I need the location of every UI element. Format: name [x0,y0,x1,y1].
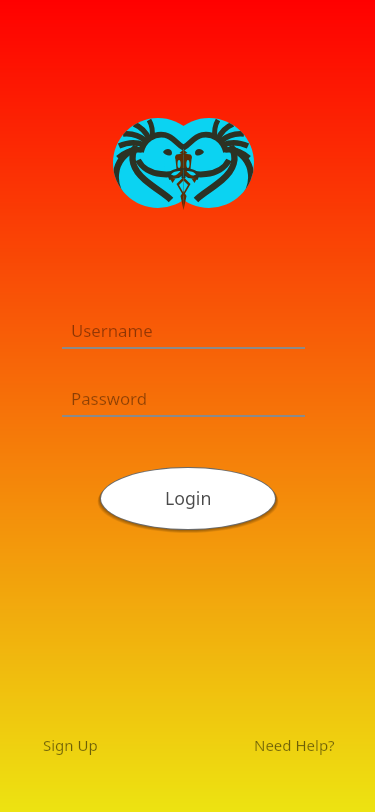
button[interactable]: Need Help? [248,729,341,761]
staticText: Need Help? [254,735,335,755]
button[interactable]: Username [62,319,305,349]
staticText: Login [165,486,212,510]
staticText: Sign Up [43,735,98,755]
button[interactable]: Login [98,465,278,532]
staticText: Username [71,319,153,342]
button[interactable]: Sign Up [37,729,104,761]
staticText: Password [71,387,147,410]
button[interactable]: Password [62,387,305,417]
